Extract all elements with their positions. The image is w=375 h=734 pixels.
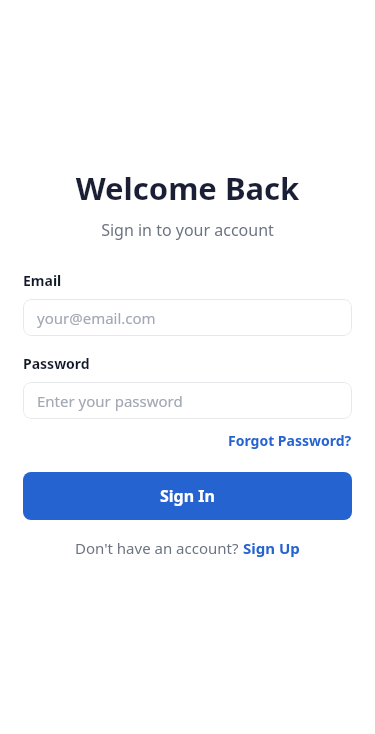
button[interactable]: Forgot Password?: [228, 431, 352, 450]
staticText: Sign Up: [243, 538, 300, 558]
button[interactable]: Sign Up: [243, 538, 300, 558]
staticText: Don't have an account?: [75, 538, 243, 558]
button[interactable]: Enter your password: [23, 382, 352, 419]
staticText: Welcome Back: [23, 167, 352, 209]
staticText: Forgot Password?: [228, 431, 352, 450]
staticText: Sign In: [160, 485, 215, 507]
staticText: Sign in to your account: [23, 219, 352, 241]
button[interactable]: Sign In: [23, 472, 352, 520]
staticText: your@email.com: [37, 308, 156, 328]
staticText: Password: [23, 354, 90, 373]
button[interactable]: your@email.com: [23, 299, 352, 336]
staticText: Enter your password: [37, 391, 183, 411]
staticText: Email: [23, 271, 62, 290]
